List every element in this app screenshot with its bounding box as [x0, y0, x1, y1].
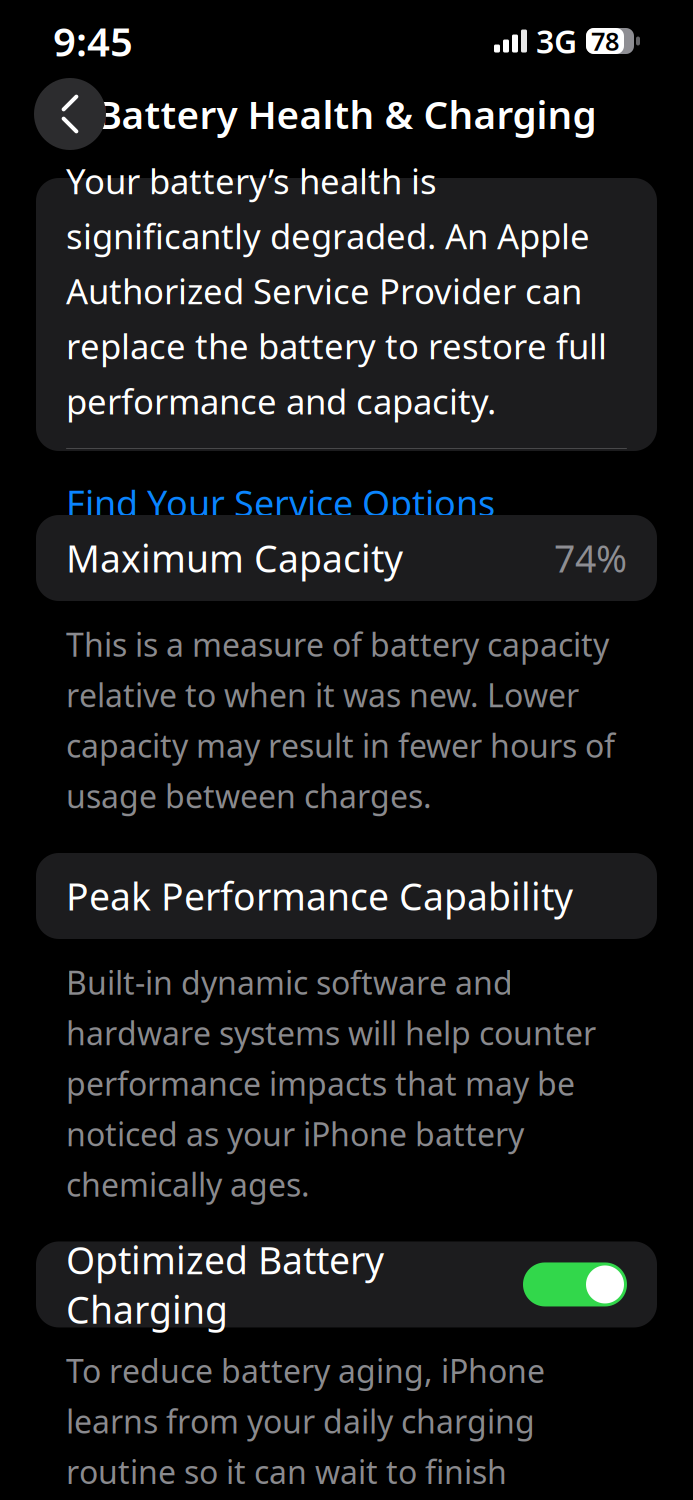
staticText: 78: [591, 24, 619, 58]
staticText: Maximum Capacity: [66, 533, 403, 583]
button[interactable]: Back: [34, 78, 106, 150]
staticText: Important Battery Message: [66, 92, 569, 142]
staticText: 3G: [536, 20, 577, 62]
staticText: Your battery’s health is significantly d…: [66, 158, 607, 424]
staticText: This is a measure of battery capacity re…: [66, 623, 615, 817]
staticText: Built-in dynamic software and hardware s…: [66, 961, 596, 1205]
staticText: Find Your Service Options: [66, 479, 495, 527]
staticText: Battery Health & Charging: [96, 88, 596, 140]
button[interactable]: Optimized Battery Charging: [36, 1241, 657, 1327]
staticText: 9:45: [53, 14, 133, 67]
button[interactable]: Find Your Service Options: [66, 449, 627, 557]
button[interactable]: Peak Performance Capability: [36, 853, 657, 939]
staticText: 74%: [554, 533, 627, 583]
staticText: Optimized Battery Charging: [66, 1235, 384, 1334]
button[interactable]: Maximum Capacity: [36, 515, 657, 601]
staticText: To reduce battery aging, iPhone learns f…: [66, 1349, 606, 1500]
staticText: Peak Performance Capability: [66, 871, 573, 921]
